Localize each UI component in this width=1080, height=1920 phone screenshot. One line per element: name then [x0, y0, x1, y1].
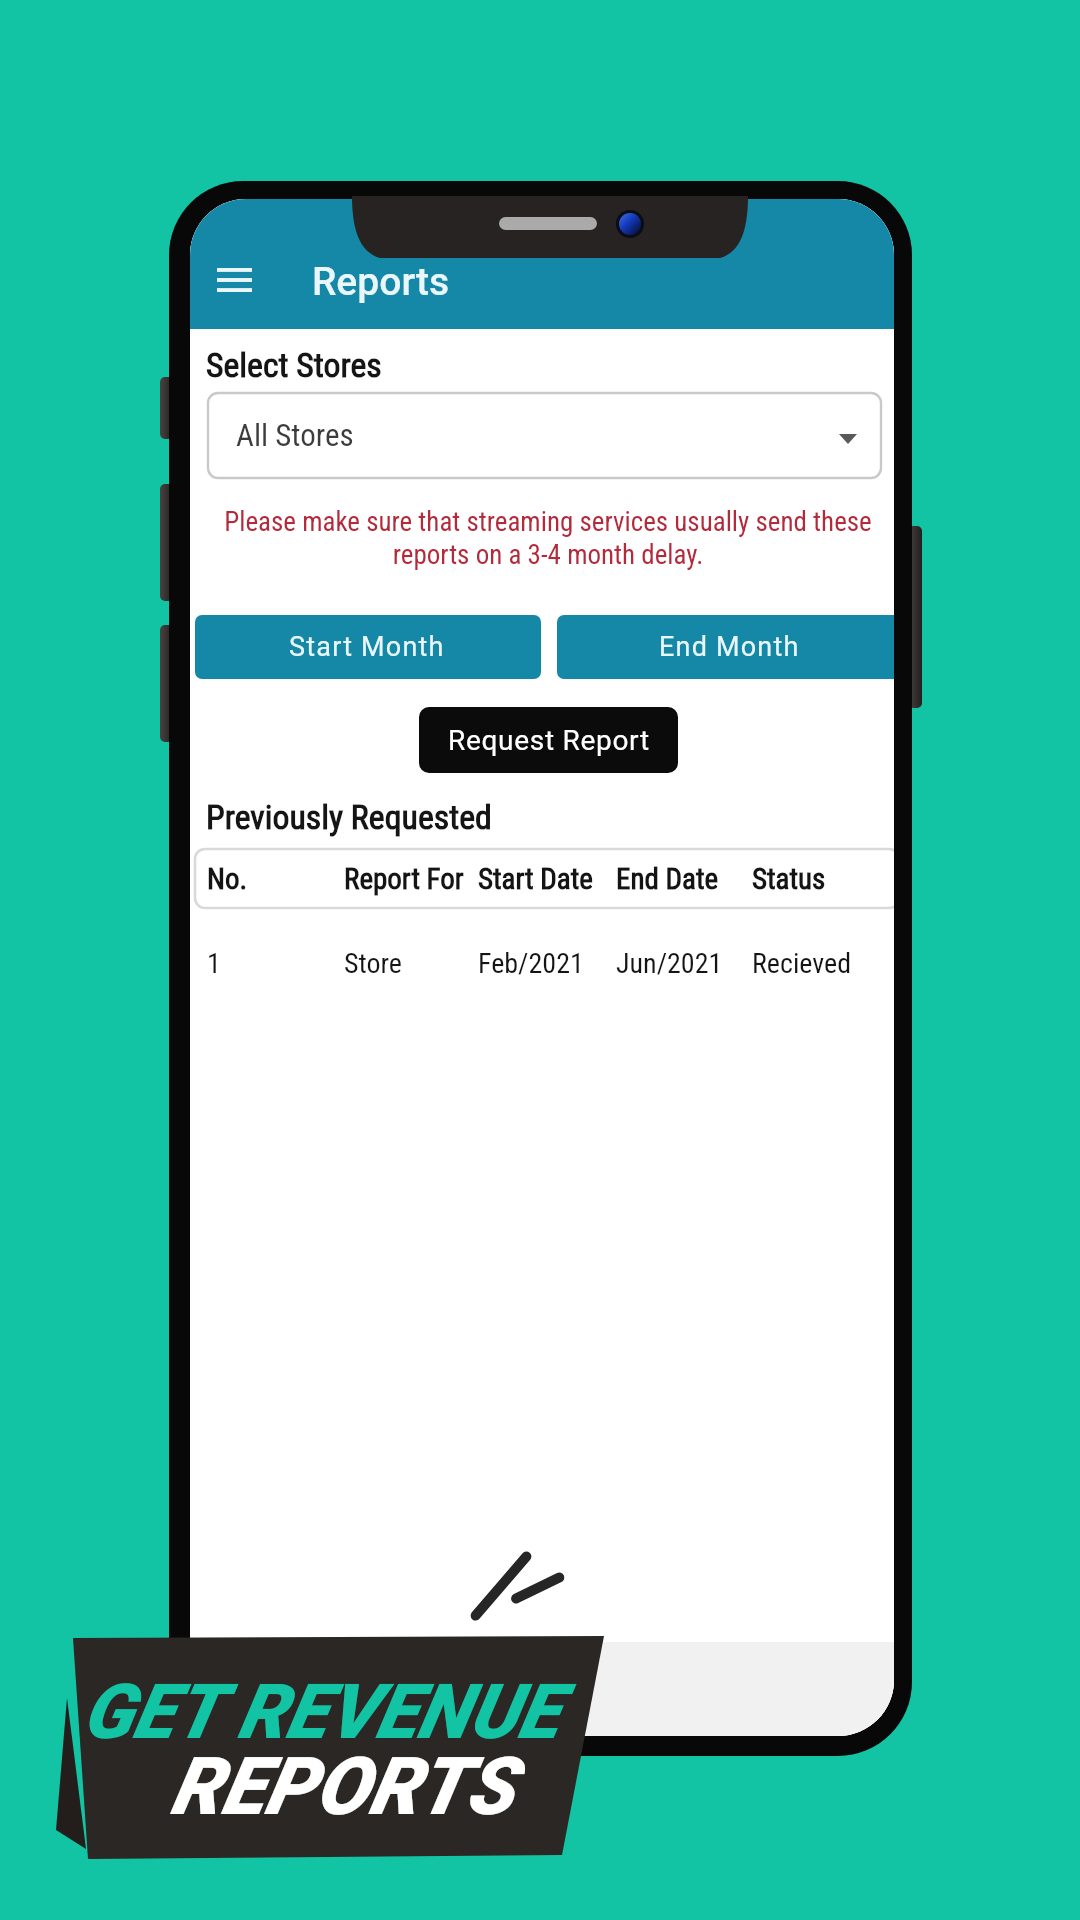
- staticText: GET REVENUE: [82, 1667, 559, 1756]
- button[interactable]: Request Report: [419, 707, 678, 773]
- staticText: Start Month: [289, 631, 445, 663]
- staticText: Jun/2021: [616, 947, 723, 980]
- staticText: Please make sure that streaming services…: [222, 506, 874, 571]
- button[interactable]: Back: [455, 1536, 579, 1634]
- staticText: Start Date: [478, 862, 593, 896]
- staticText: Status: [752, 862, 826, 896]
- staticText: 1: [207, 947, 221, 980]
- staticText: Request Report: [448, 724, 650, 757]
- staticText: Select Stores: [206, 346, 382, 386]
- staticText: Feb/2021: [478, 947, 584, 980]
- button[interactable]: Open navigation menu: [203, 254, 265, 306]
- button[interactable]: [195, 920, 894, 986]
- button[interactable]: Start Month: [195, 615, 541, 679]
- staticText: No.: [207, 862, 248, 896]
- staticText: End Date: [616, 862, 719, 896]
- staticText: Store: [344, 947, 402, 980]
- staticText: End Month: [659, 631, 800, 663]
- button[interactable]: All Stores: [208, 393, 881, 478]
- staticText: Report For: [344, 862, 464, 896]
- staticText: REPORTS: [170, 1740, 514, 1834]
- staticText: All Stores: [236, 417, 354, 453]
- button[interactable]: End Month: [557, 615, 894, 679]
- staticText: Recieved: [752, 947, 852, 980]
- staticText: Previously Requested: [206, 798, 492, 838]
- staticText: Reports: [312, 259, 450, 305]
